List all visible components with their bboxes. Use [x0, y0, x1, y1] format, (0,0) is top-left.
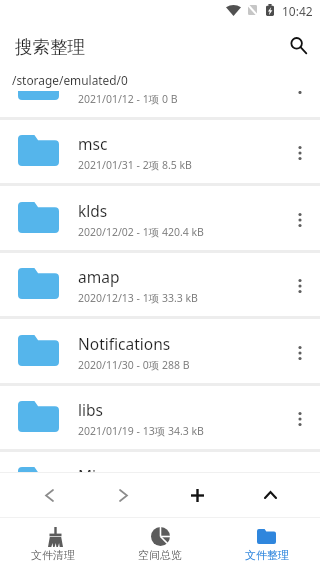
staticText: /storage/emulated/0 — [12, 72, 128, 88]
button[interactable]: klds — [0, 187, 320, 253]
staticText: amap — [78, 266, 120, 287]
staticText: Notifications — [78, 333, 171, 354]
staticText: 文件整理 — [245, 548, 289, 562]
staticText: klds — [78, 200, 108, 221]
staticText: 2021/01/19 - 13项 34.3 kB — [78, 424, 204, 438]
button[interactable]: Mi — [0, 452, 320, 472]
button[interactable]: 文件清理 — [0, 517, 106, 568]
button[interactable]: Add — [175, 473, 219, 517]
button[interactable]: More options — [283, 336, 317, 370]
button[interactable]: amap — [0, 253, 320, 319]
button[interactable]: 空间总览 — [106, 517, 213, 568]
button[interactable]: Forward — [101, 473, 145, 517]
staticText: 文件清理 — [31, 548, 75, 562]
button[interactable]: More options — [283, 136, 317, 170]
staticText: 2020/11/30 - 0项 288 B — [78, 358, 190, 372]
staticText: 空间总览 — [138, 548, 182, 562]
staticText: 2020/12/13 - 1项 33.3 kB — [78, 291, 198, 305]
staticText: 2020/12/02 - 1项 420.4 kB — [78, 225, 204, 239]
button[interactable]: libs — [0, 386, 320, 452]
staticText: 搜索整理 — [15, 36, 85, 58]
staticText: Mi — [78, 465, 97, 472]
staticText: 2021/01/12 - 1项 0 B — [78, 92, 178, 106]
staticText: msc — [78, 133, 108, 154]
button[interactable]: Up — [248, 473, 292, 517]
button[interactable]: More options — [283, 91, 317, 104]
button[interactable]: Back — [27, 473, 71, 517]
staticText: 10:42 — [282, 3, 313, 19]
button[interactable]: 文件整理 — [213, 517, 320, 568]
button[interactable]: msc — [0, 120, 320, 186]
staticText: libs — [78, 399, 103, 420]
button[interactable]: More options — [283, 402, 317, 436]
button[interactable]: Search — [278, 25, 318, 65]
button[interactable]: 2021/01/12 - 1项 0 B — [0, 91, 320, 120]
button[interactable]: More options — [283, 203, 317, 237]
staticText: 2021/01/31 - 2项 8.5 kB — [78, 158, 192, 172]
button[interactable]: Notifications — [0, 320, 320, 386]
button[interactable]: More options — [283, 269, 317, 303]
